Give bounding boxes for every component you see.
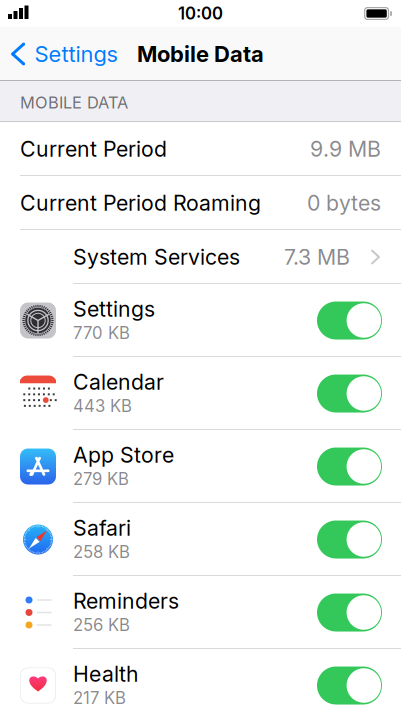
button[interactable]: System Services bbox=[0, 230, 401, 284]
staticText: 258 KB bbox=[73, 542, 130, 562]
button[interactable]: Safari bbox=[0, 503, 401, 576]
staticText: Mobile Data bbox=[137, 41, 264, 67]
staticText: Current Period bbox=[20, 136, 167, 162]
button[interactable]: App Store bbox=[0, 430, 401, 503]
staticText: MOBILE DATA bbox=[20, 93, 128, 112]
staticText: Settings bbox=[34, 41, 117, 67]
button[interactable]: Reminders bbox=[0, 576, 401, 649]
staticText: Safari bbox=[73, 515, 131, 541]
button[interactable]: Current Period Roaming bbox=[0, 176, 401, 230]
staticText: 7.3 MB bbox=[284, 244, 350, 270]
staticText: 256 KB bbox=[73, 615, 130, 635]
staticText: 770 KB bbox=[73, 323, 130, 343]
staticText: 0 bytes bbox=[307, 190, 381, 216]
staticText: App Store bbox=[73, 442, 174, 468]
staticText: 10:00 bbox=[178, 3, 223, 24]
staticText: 9.9 MB bbox=[310, 136, 381, 162]
button[interactable]: Health bbox=[0, 649, 401, 712]
staticText: 217 KB bbox=[73, 688, 126, 708]
staticText: Current Period Roaming bbox=[20, 190, 261, 216]
button[interactable]: Current Period bbox=[0, 122, 401, 176]
staticText: 279 KB bbox=[73, 469, 129, 489]
staticText: Settings bbox=[73, 296, 155, 322]
staticText: Health bbox=[73, 661, 139, 687]
button[interactable]: Settings bbox=[0, 284, 401, 357]
button[interactable]: Calendar bbox=[0, 357, 401, 430]
staticText: System Services bbox=[73, 244, 240, 270]
staticText: Calendar bbox=[73, 369, 164, 395]
staticText: 443 KB bbox=[73, 396, 132, 416]
button[interactable]: Settings bbox=[0, 27, 127, 81]
staticText: Reminders bbox=[73, 588, 179, 614]
